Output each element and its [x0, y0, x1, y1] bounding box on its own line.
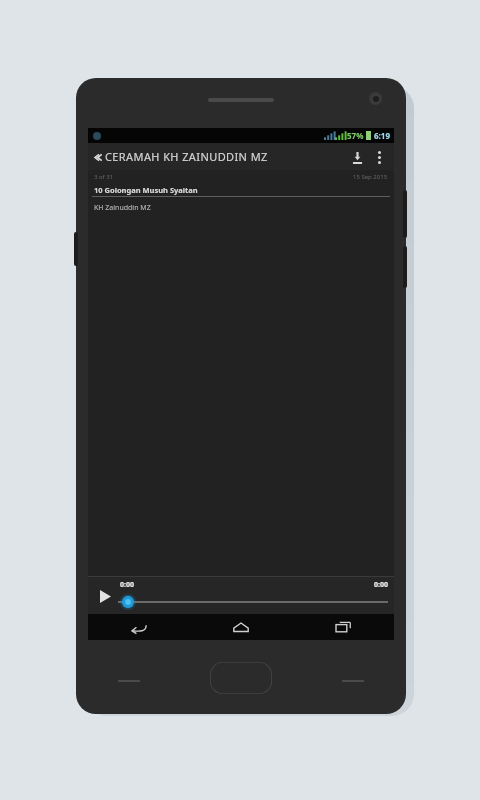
staticText: 3 of 31	[94, 173, 114, 181]
staticText: KH Zainuddin MZ	[94, 203, 151, 213]
staticText: 0:00	[120, 580, 134, 590]
button[interactable]: Back	[88, 614, 190, 640]
button[interactable]: Home	[190, 614, 292, 640]
staticText: 15 Sep 2015	[353, 173, 388, 181]
button[interactable]: Back	[93, 145, 105, 169]
staticText: 0:00	[374, 580, 388, 590]
staticText: 57%	[347, 130, 364, 141]
staticText: 10 Golongan Musuh Syaitan	[94, 185, 198, 195]
button[interactable]: Download	[345, 145, 369, 169]
button[interactable]: More options	[369, 145, 389, 169]
button[interactable]: Play	[92, 581, 118, 611]
button[interactable]: Seek bar	[118, 594, 388, 610]
staticText: 6:19	[374, 130, 390, 141]
staticText: CERAMAH KH ZAINUDDIN MZ	[105, 149, 268, 164]
button[interactable]: Recent apps	[292, 614, 394, 640]
